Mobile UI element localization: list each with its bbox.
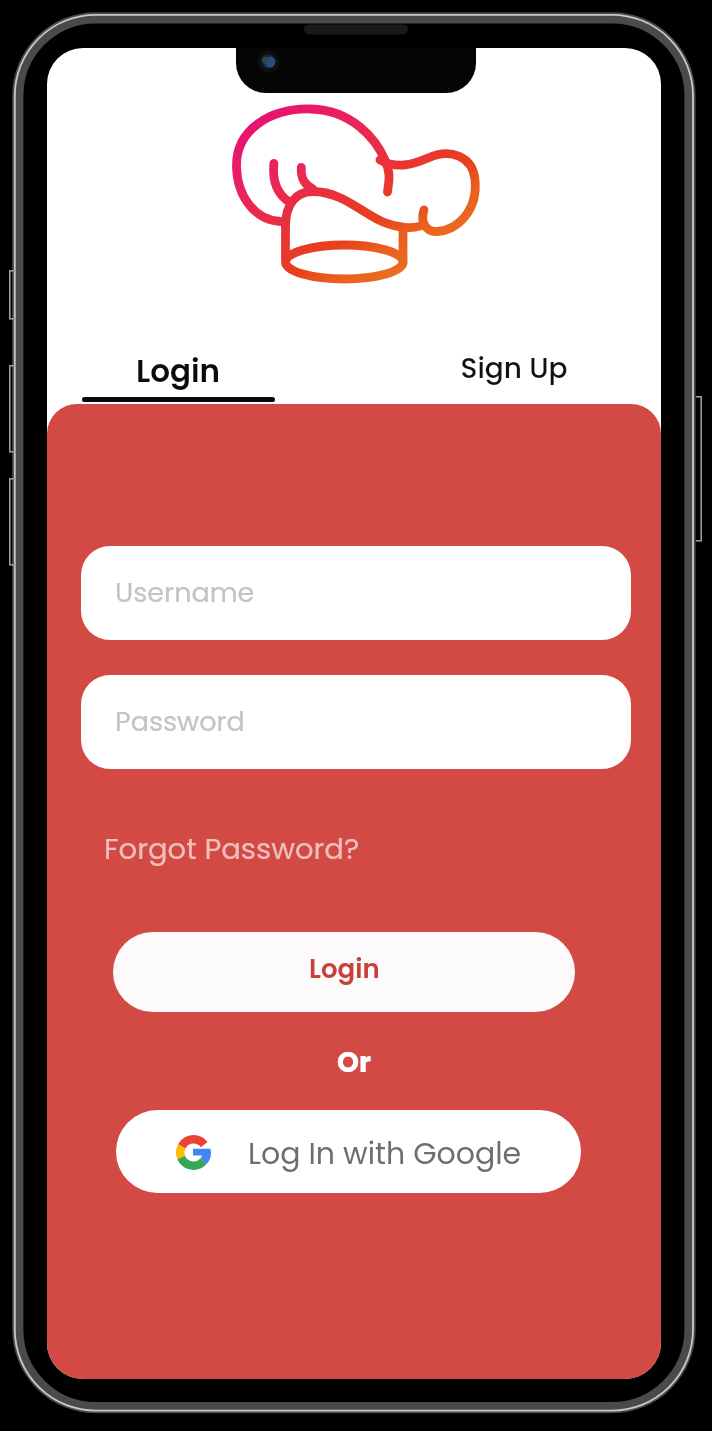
other: Chef hat app logo bbox=[228, 98, 478, 288]
button[interactable]: Login bbox=[58, 349, 298, 392]
button[interactable]: Password bbox=[81, 675, 631, 769]
staticText: Login bbox=[309, 951, 380, 987]
button[interactable]: Username bbox=[81, 546, 631, 640]
staticText: Log In with Google bbox=[248, 1133, 522, 1175]
staticText: Sign Up bbox=[394, 349, 634, 388]
staticText: Or bbox=[337, 1043, 371, 1082]
staticText: Username bbox=[115, 574, 255, 612]
button[interactable]: Sign Up bbox=[394, 349, 634, 388]
staticText: Password bbox=[115, 703, 245, 741]
staticText: Login bbox=[58, 349, 298, 392]
button[interactable]: Log In with Google bbox=[116, 1110, 581, 1193]
button[interactable]: Forgot Password? bbox=[104, 829, 360, 870]
button[interactable]: Login bbox=[113, 932, 575, 1012]
